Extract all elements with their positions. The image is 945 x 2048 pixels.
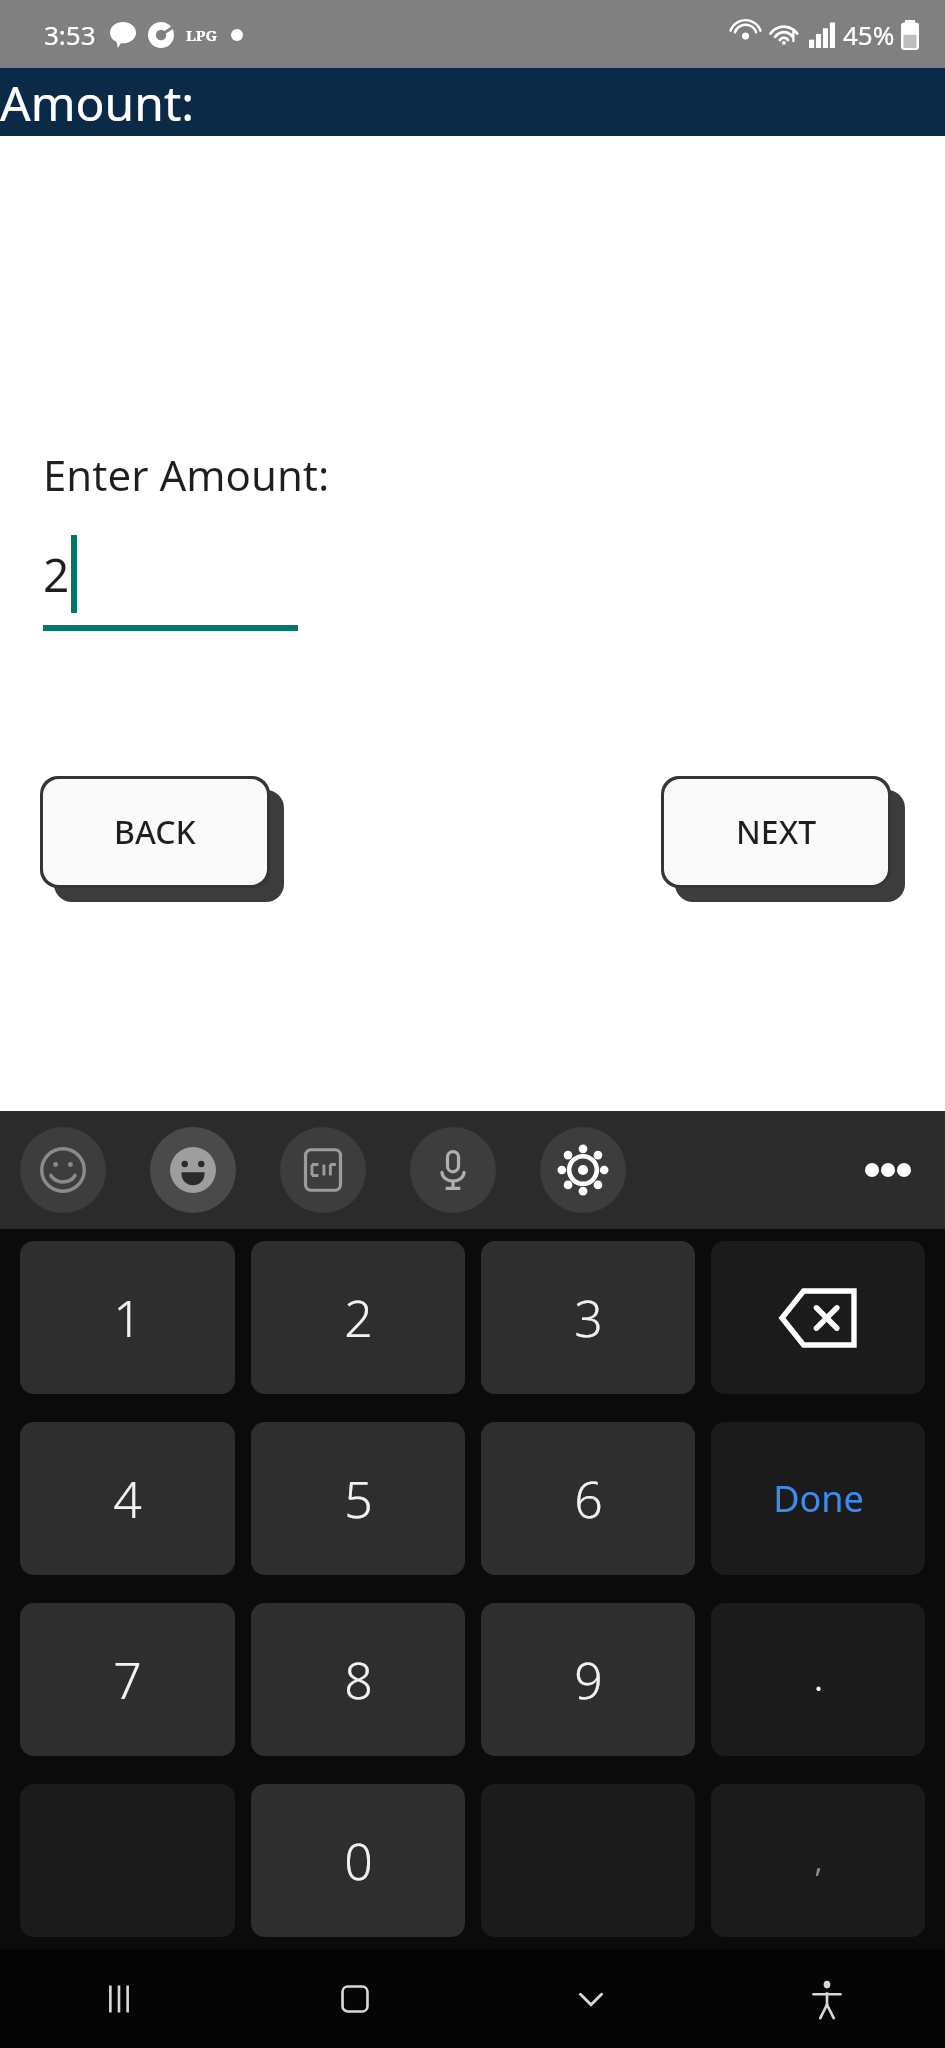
staticText: Amount: bbox=[0, 70, 195, 135]
button[interactable]: 4 bbox=[20, 1422, 235, 1575]
button[interactable]: 1 bbox=[20, 1241, 235, 1394]
button[interactable]: Done bbox=[711, 1422, 925, 1575]
staticText: 8 bbox=[344, 1646, 373, 1714]
staticText: LPG bbox=[186, 25, 217, 45]
button[interactable]: Emoji bbox=[150, 1127, 236, 1213]
staticText: 3 bbox=[574, 1284, 603, 1352]
staticText: 45% bbox=[843, 17, 895, 52]
button[interactable]: Home bbox=[237, 1949, 473, 2048]
staticText: 9 bbox=[574, 1646, 603, 1714]
staticText: 0 bbox=[344, 1827, 373, 1895]
button[interactable]: Accessibility bbox=[709, 1949, 945, 2048]
staticText: Done bbox=[773, 1474, 864, 1523]
button[interactable]: 8 bbox=[251, 1603, 465, 1756]
button[interactable]: 7 bbox=[20, 1603, 235, 1756]
staticText: NEXT bbox=[736, 810, 817, 854]
staticText: 2 bbox=[43, 543, 70, 606]
staticText: Enter Amount: bbox=[43, 446, 330, 503]
staticText: 6 bbox=[574, 1465, 603, 1533]
button[interactable]: Sticker bbox=[20, 1127, 106, 1213]
button[interactable]: . bbox=[711, 1603, 925, 1756]
button[interactable]: Keyboard settings bbox=[540, 1127, 626, 1213]
button[interactable]: 9 bbox=[481, 1603, 695, 1756]
button[interactable]: 5 bbox=[251, 1422, 465, 1575]
button[interactable]: Backspace bbox=[711, 1241, 925, 1394]
button[interactable]: 2 bbox=[43, 531, 298, 631]
staticText: 1 bbox=[113, 1284, 142, 1352]
button[interactable]: BACK bbox=[40, 776, 284, 902]
staticText: 2 bbox=[344, 1284, 373, 1352]
staticText: 3:53 bbox=[44, 17, 96, 52]
button[interactable]: 6 bbox=[481, 1422, 695, 1575]
button[interactable]: Voice input bbox=[410, 1127, 496, 1213]
button[interactable]: Hide keyboard bbox=[473, 1949, 709, 2048]
staticText: , bbox=[814, 1840, 823, 1881]
staticText: 5 bbox=[344, 1465, 373, 1533]
staticText: BACK bbox=[114, 810, 196, 854]
button[interactable]: Recent apps bbox=[0, 1949, 237, 2048]
staticText: . bbox=[814, 1659, 823, 1700]
button[interactable]: More options bbox=[845, 1127, 931, 1213]
button[interactable]: GIF bbox=[280, 1127, 366, 1213]
button[interactable]: 0 bbox=[251, 1784, 465, 1937]
button[interactable]: NEXT bbox=[661, 776, 905, 902]
button[interactable]: 3 bbox=[481, 1241, 695, 1394]
staticText: 4 bbox=[113, 1465, 142, 1533]
button[interactable]: 2 bbox=[251, 1241, 465, 1394]
staticText: 7 bbox=[113, 1646, 142, 1714]
